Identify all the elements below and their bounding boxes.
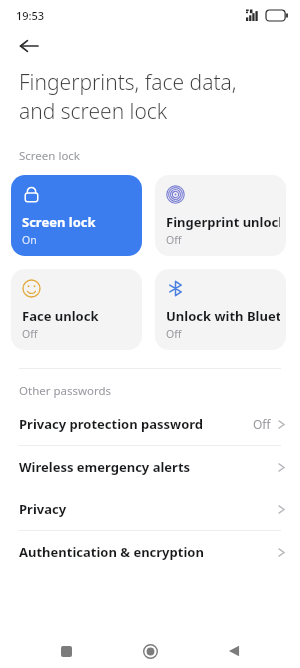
button[interactable]: Fingerprint unlock xyxy=(155,175,286,256)
staticText: Privacy protection password xyxy=(19,415,253,433)
button[interactable]: Back xyxy=(12,30,46,62)
staticText: Other passwords xyxy=(19,383,112,399)
button[interactable]: Recents xyxy=(48,634,84,668)
staticText: Face unlock xyxy=(22,307,99,325)
button[interactable]: Unlock with Bluetooth xyxy=(155,269,286,350)
staticText: Fingerprint unlock xyxy=(166,213,280,231)
staticText: Screen lock xyxy=(22,213,96,231)
button[interactable]: Face unlock xyxy=(11,269,142,350)
button[interactable]: Home xyxy=(132,634,168,668)
staticText: Wireless emergency alerts xyxy=(19,458,277,476)
staticText: Screen lock xyxy=(19,148,81,164)
button[interactable]: Back xyxy=(216,634,252,668)
button[interactable]: Authentication & encryption xyxy=(0,531,300,573)
staticText: Authentication & encryption xyxy=(19,543,277,561)
staticText: and screen lock xyxy=(19,97,168,126)
staticText: On xyxy=(22,233,37,247)
staticText: Unlock with Bluetooth xyxy=(166,307,280,325)
button[interactable]: Privacy protection password xyxy=(0,403,300,445)
staticText: Off xyxy=(22,327,38,341)
staticText: Privacy xyxy=(19,500,277,518)
button[interactable]: Privacy xyxy=(0,488,300,530)
button[interactable]: Screen lock xyxy=(11,175,142,256)
staticText: Fingerprints, face data, xyxy=(19,68,237,97)
button[interactable]: Wireless emergency alerts xyxy=(0,446,300,488)
staticText: Off xyxy=(253,416,271,432)
staticText: 19:53 xyxy=(16,8,45,23)
staticText: Off xyxy=(166,233,182,247)
staticText: Off xyxy=(166,327,182,341)
